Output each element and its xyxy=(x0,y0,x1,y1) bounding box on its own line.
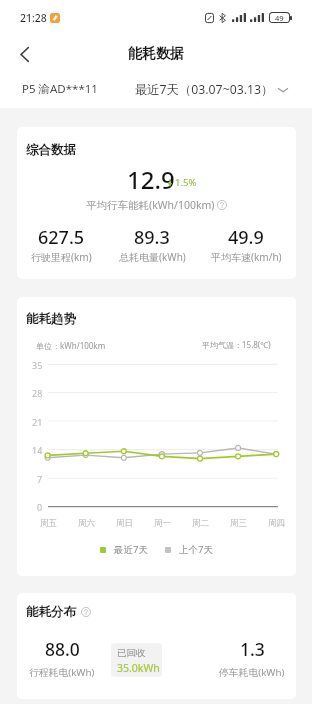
staticText: 1.5% xyxy=(175,176,197,189)
staticText: 能耗数据 xyxy=(128,45,184,63)
staticText: 周五 xyxy=(40,518,57,529)
staticText: 49.9 xyxy=(228,225,264,250)
staticText: 周日 xyxy=(116,518,133,529)
staticText: 最近7天（03.07~03.13） xyxy=(135,81,274,98)
staticText: P5 渝AD***11 xyxy=(22,81,98,97)
staticText: 周三 xyxy=(230,518,247,529)
staticText: 平均气温：15.8(℃) xyxy=(202,339,271,350)
staticText: 28 xyxy=(32,387,43,399)
button[interactable]: 最近7天（03.07~03.13） xyxy=(135,81,288,98)
staticText: 周二 xyxy=(192,518,209,529)
staticText: 21 xyxy=(32,416,43,428)
staticText: 单位：kWh/100km xyxy=(36,340,106,351)
staticText: 627.5 xyxy=(38,225,85,250)
staticText: 能耗趋势 xyxy=(26,311,76,327)
button[interactable]: Back xyxy=(4,34,44,74)
staticText: 已回收 xyxy=(117,647,146,659)
staticText: 88.0 xyxy=(45,637,80,661)
staticText: 0 xyxy=(37,501,43,513)
staticText: 平均车速(km/h) xyxy=(211,250,282,264)
staticText: 35.0kWh xyxy=(117,661,160,675)
staticText: 平均行车能耗(kWh/100km) xyxy=(86,198,215,212)
staticText: 35 xyxy=(32,359,43,371)
staticText: 周六 xyxy=(78,518,95,529)
staticText: 能耗分布 xyxy=(26,604,76,620)
staticText: 周一 xyxy=(154,518,171,529)
staticText: 停车耗电(kWh) xyxy=(219,666,285,679)
button[interactable]: P5 渝AD***11 xyxy=(22,81,98,97)
staticText: 12.9 xyxy=(127,163,175,196)
staticText: 总耗电量(kWh) xyxy=(119,250,186,264)
staticText: 综合数据 xyxy=(26,142,76,158)
staticText: 周四 xyxy=(268,518,285,529)
staticText: 89.3 xyxy=(134,225,170,250)
staticText: 最近7天 xyxy=(114,543,148,556)
staticText: 7 xyxy=(37,473,43,485)
staticText: 上个7天 xyxy=(179,543,213,556)
staticText: 行驶里程(km) xyxy=(31,250,92,264)
staticText: 14 xyxy=(32,444,43,456)
staticText: 行程耗电(kWh) xyxy=(29,666,95,679)
staticText: 1.3 xyxy=(240,637,265,661)
staticText: 21:28 xyxy=(20,11,47,25)
staticText: 49 xyxy=(275,13,284,22)
